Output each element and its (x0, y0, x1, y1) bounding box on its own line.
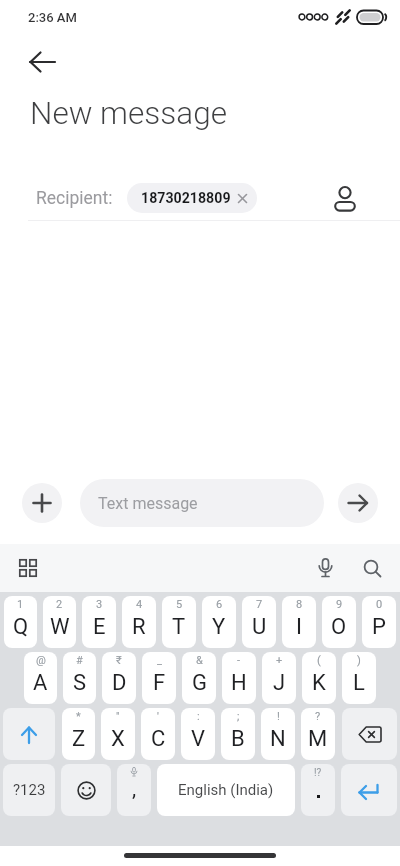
staticText: * (76, 710, 81, 723)
button[interactable]: Text message (80, 479, 324, 527)
staticText: !? (314, 767, 322, 779)
staticText: Text message (98, 494, 198, 513)
staticText: 1 (17, 598, 24, 611)
button[interactable]: - (222, 652, 256, 704)
button[interactable]: ( (302, 652, 336, 704)
staticText: & (196, 654, 203, 667)
staticText: G (192, 670, 207, 696)
button[interactable]: @ (24, 652, 57, 704)
button[interactable] (341, 764, 397, 816)
button[interactable]: ?123 (3, 764, 55, 816)
staticText: O (331, 614, 347, 640)
staticText: S (73, 670, 87, 696)
button[interactable] (22, 483, 62, 523)
button[interactable]: 18730218809 (127, 183, 257, 213)
staticText: Recipient: (36, 188, 113, 209)
staticText: X (111, 726, 125, 752)
staticText: 18730218809 (141, 190, 231, 207)
staticText: ; (237, 710, 240, 723)
button[interactable] (26, 48, 60, 76)
staticText: A (33, 670, 48, 696)
staticText: English (India) (178, 781, 274, 799)
staticText: + (276, 654, 283, 667)
staticText: 0 (376, 598, 383, 611)
button[interactable]: 2 (43, 596, 76, 648)
button[interactable]: , (117, 764, 151, 816)
staticText: 8 (296, 598, 303, 611)
staticText: Q (13, 614, 29, 640)
button[interactable]: ! (261, 708, 295, 760)
staticText: Y (212, 614, 226, 640)
staticText: L (353, 670, 365, 696)
staticText: ₹ (116, 654, 122, 667)
button[interactable]: + (262, 652, 296, 704)
button[interactable]: 6 (202, 596, 236, 648)
button[interactable]: " (101, 708, 135, 760)
staticText: ? (315, 710, 321, 723)
button[interactable] (312, 555, 338, 581)
staticText: 3 (96, 598, 103, 611)
staticText: R (132, 614, 146, 640)
button[interactable]: ₹ (102, 652, 136, 704)
button[interactable]: 4 (122, 596, 156, 648)
button[interactable]: 7 (242, 596, 276, 648)
staticText: : (197, 710, 200, 723)
staticText: P (372, 614, 386, 640)
button[interactable]: & (182, 652, 216, 704)
staticText: # (76, 654, 83, 667)
staticText: New message (30, 95, 227, 132)
button[interactable] (15, 555, 41, 581)
staticText: @ (36, 654, 46, 667)
button[interactable]: ; (221, 708, 255, 760)
staticText: 4 (136, 598, 143, 611)
button[interactable]: _ (142, 652, 176, 704)
staticText: V (191, 726, 206, 752)
button[interactable]: English (India) (157, 764, 295, 816)
button[interactable]: 8 (282, 596, 316, 648)
staticText: B (231, 726, 245, 752)
staticText: ?123 (13, 781, 46, 799)
button[interactable]: 1 (4, 596, 37, 648)
button[interactable]: : (181, 708, 215, 760)
staticText: E (93, 614, 106, 640)
staticText: ) (357, 654, 361, 667)
button[interactable]: !? (301, 764, 335, 816)
button[interactable] (3, 708, 55, 760)
button[interactable]: 0 (362, 596, 396, 648)
button[interactable]: ' (141, 708, 175, 760)
button[interactable] (61, 764, 111, 816)
staticText: H (231, 670, 247, 696)
staticText: 6 (216, 598, 223, 611)
staticText: ( (317, 654, 321, 667)
staticText: _ (157, 654, 162, 667)
staticText: 2 (56, 598, 63, 611)
staticText: ! (277, 710, 280, 723)
button[interactable] (342, 708, 397, 760)
button[interactable]: # (63, 652, 96, 704)
staticText: N (270, 726, 286, 752)
button[interactable] (329, 182, 361, 214)
staticText: 9 (336, 598, 343, 611)
staticText: M (308, 726, 328, 752)
staticText: , (132, 777, 137, 802)
staticText: 7 (256, 598, 263, 611)
staticText: D (112, 670, 127, 696)
staticText: I (296, 614, 302, 640)
button[interactable]: * (62, 708, 95, 760)
staticText: 2:36 AM (28, 10, 77, 25)
button[interactable]: 3 (82, 596, 116, 648)
button[interactable]: ) (342, 652, 376, 704)
button[interactable]: 5 (162, 596, 196, 648)
staticText: Z (72, 726, 86, 752)
button[interactable]: 9 (322, 596, 356, 648)
button[interactable] (338, 483, 378, 523)
staticText: J (273, 670, 286, 696)
button[interactable]: ? (301, 708, 335, 760)
staticText: W (50, 614, 70, 640)
button[interactable] (359, 555, 385, 581)
staticText: ' (157, 710, 159, 723)
staticText: C (151, 726, 166, 752)
staticText: F (153, 670, 166, 696)
staticText: T (172, 614, 186, 640)
staticText: 5 (176, 598, 183, 611)
